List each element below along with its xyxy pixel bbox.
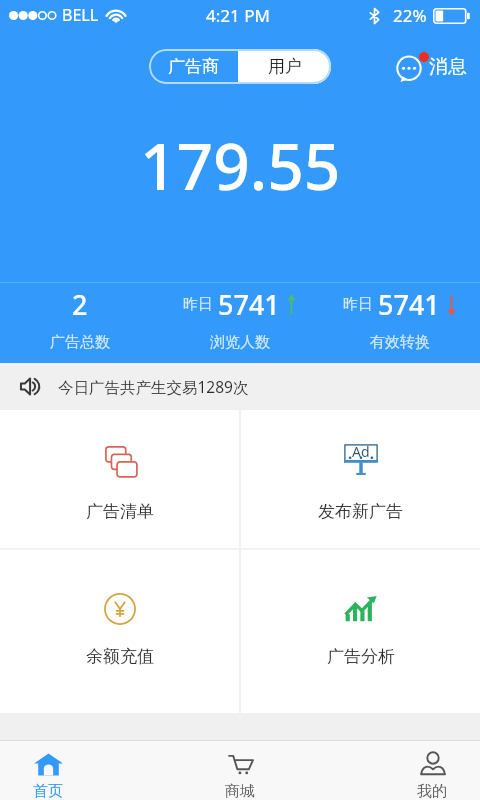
staticText: 5741 — [218, 286, 280, 323]
staticText: 有效转换 — [370, 333, 430, 352]
staticText: Ad — [352, 442, 370, 461]
button[interactable]: 昨日 — [320, 283, 480, 354]
staticText: 浏览人数 — [210, 333, 270, 352]
button[interactable]: 广告分析 — [241, 550, 480, 713]
button[interactable]: 今日广告共产生交易1289次 — [20, 363, 480, 410]
staticText: 消息 — [429, 55, 467, 79]
staticText: 179.55 — [140, 122, 341, 192]
staticText: 昨日 — [183, 295, 213, 314]
staticText: 今日广告共产生交易1289次 — [58, 376, 249, 397]
staticText: 2 — [72, 286, 88, 323]
staticText: 首页 — [33, 782, 63, 800]
button[interactable]: 消息 — [396, 52, 467, 82]
button[interactable]: 广告清单 — [0, 410, 239, 548]
button[interactable]: 余额充值 — [0, 550, 239, 713]
button[interactable]: 2 — [0, 283, 160, 354]
staticText: BELL — [62, 4, 99, 26]
staticText: 广告商 — [168, 56, 219, 77]
staticText: 昨日 — [343, 295, 373, 314]
staticText: 广告分析 — [327, 646, 395, 667]
staticText: 广告清单 — [86, 501, 154, 522]
button[interactable]: Ad — [241, 410, 480, 548]
staticText: 余额充值 — [86, 646, 154, 667]
staticText: 我的 — [417, 782, 447, 800]
staticText: 用户 — [268, 56, 302, 77]
button[interactable]: 昨日 — [160, 283, 320, 354]
staticText: 商城 — [225, 782, 255, 800]
button[interactable]: 用户 — [238, 49, 331, 84]
button[interactable]: 商城 — [192, 741, 288, 800]
button[interactable]: 广告商 — [149, 49, 238, 84]
staticText: 发布新广告 — [318, 501, 403, 522]
button[interactable]: 我的 — [384, 741, 480, 800]
staticText: 广告总数 — [50, 333, 110, 352]
staticText: 22% — [393, 4, 427, 27]
staticText: 5741 — [378, 286, 440, 323]
staticText: 4:21 PM — [206, 4, 270, 27]
button[interactable]: 首页 — [0, 741, 96, 800]
